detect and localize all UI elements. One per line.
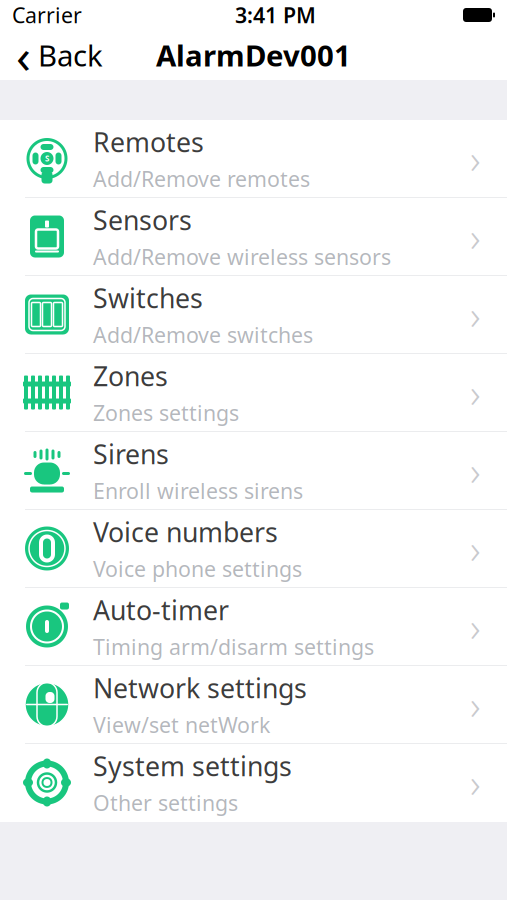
staticText: › [470, 210, 481, 263]
staticText: › [470, 756, 481, 809]
staticText: Timing arm/disarm settings [93, 632, 374, 661]
button[interactable]: System settings [0, 744, 507, 822]
staticText: 3:41 PM [235, 1, 316, 29]
staticText: Auto-timer [93, 592, 229, 627]
button[interactable]: Switches [0, 276, 507, 354]
button[interactable]: Sensors [0, 198, 507, 276]
staticText: Sensors [93, 202, 192, 237]
staticText: › [470, 366, 481, 419]
staticText: Switches [93, 280, 203, 315]
staticText: ‹ [16, 23, 31, 87]
staticText: AlarmDev001 [156, 35, 351, 74]
staticText: Add/Remove switches [93, 320, 313, 349]
staticText: S [45, 153, 49, 164]
staticText: Zones settings [93, 398, 239, 427]
button[interactable]: Zones [0, 354, 507, 432]
staticText: Voice numbers [93, 514, 278, 549]
staticText: Add/Remove wireless sensors [93, 242, 391, 271]
staticText: Add/Remove remotes [93, 164, 310, 193]
staticText: Other settings [93, 788, 238, 817]
staticText: › [470, 444, 481, 497]
staticText: › [470, 678, 481, 731]
staticText: Zones [93, 358, 168, 393]
button[interactable]: Sirens [0, 432, 507, 510]
staticText: › [470, 132, 481, 185]
staticText: › [470, 600, 481, 653]
staticText: Sirens [93, 436, 169, 471]
staticText: Back [38, 35, 103, 74]
staticText: › [470, 288, 481, 341]
staticText: › [470, 522, 481, 575]
staticText: Enroll wireless sirens [93, 476, 303, 505]
button[interactable]: Voice numbers [0, 510, 507, 588]
button[interactable]: S [0, 120, 507, 198]
staticText: Voice phone settings [93, 554, 302, 583]
staticText: Network settings [93, 670, 307, 705]
button[interactable]: Auto-timer [0, 588, 507, 666]
staticText: View/set netWork [93, 710, 270, 739]
staticText: Carrier [12, 1, 82, 29]
button[interactable]: ‹ [0, 30, 103, 80]
button[interactable]: Network settings [0, 666, 507, 744]
staticText: Remotes [93, 124, 204, 159]
staticText: System settings [93, 748, 292, 783]
